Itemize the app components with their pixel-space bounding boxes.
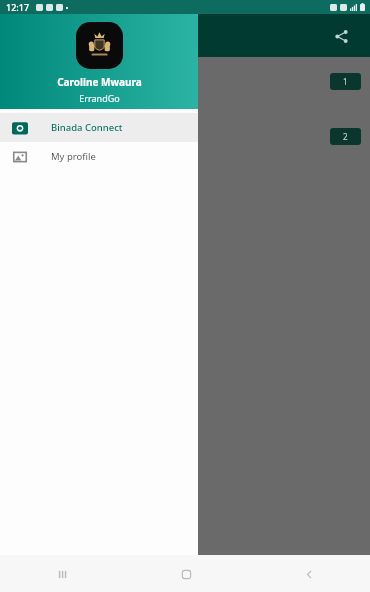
button[interactable]: Share	[326, 21, 356, 51]
button[interactable]: Back	[294, 559, 324, 589]
staticText: Binada Connect	[51, 121, 123, 134]
button[interactable]: Binada Connect	[0, 113, 198, 142]
button[interactable]: My profile	[0, 142, 198, 171]
staticText: My profile	[51, 150, 96, 163]
staticText: 1	[343, 76, 348, 87]
button[interactable]: Recents	[47, 559, 77, 589]
button[interactable]: 2	[330, 128, 361, 145]
staticText: 2	[343, 131, 348, 142]
staticText: ErrandGo	[79, 92, 120, 104]
button[interactable]: 1	[330, 73, 361, 90]
button[interactable]: Home	[171, 559, 201, 589]
staticText: Caroline Mwaura	[57, 75, 142, 89]
staticText: 12:17	[6, 1, 30, 13]
